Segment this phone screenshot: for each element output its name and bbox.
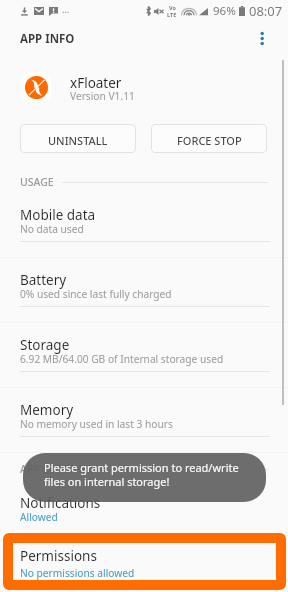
staticText: LTE (167, 11, 177, 18)
staticText: Mobile data (20, 206, 96, 224)
staticText: Permissions (20, 547, 97, 565)
staticText: Please grant permission to read/write fi… (44, 460, 239, 489)
staticText: Vo (169, 4, 176, 11)
staticText: Version V1.11 (70, 89, 135, 103)
staticText: UNINSTALL (48, 133, 108, 148)
staticText: No data used (20, 222, 84, 236)
staticText: ... (62, 3, 70, 15)
staticText: FORCE STOP (177, 133, 242, 148)
button[interactable]: Notifications (0, 491, 288, 556)
staticText: Notifications (20, 494, 101, 512)
staticText: xFloater (70, 74, 122, 92)
button[interactable]: Permissions (3, 533, 286, 590)
button[interactable]: UNINSTALL (20, 124, 136, 153)
button[interactable]: Battery (0, 268, 288, 333)
staticText: APP SETTINGS (20, 462, 92, 476)
button[interactable]: More options (248, 22, 276, 50)
button[interactable]: Mobile data (0, 203, 288, 268)
staticText: 96% (213, 3, 236, 19)
button[interactable]: FORCE STOP (151, 124, 267, 153)
staticText: Storage (20, 336, 70, 354)
staticText: 6.92 MB/64.00 GB of Internal storage use… (20, 352, 224, 366)
staticText: No memory used in last 3 hours (20, 417, 173, 431)
staticText: APP INFO (20, 31, 75, 47)
staticText: Memory (20, 401, 74, 419)
staticText: Battery (20, 271, 67, 289)
button[interactable]: Memory (0, 398, 288, 463)
staticText: USAGE (20, 175, 54, 189)
staticText: Allowed (20, 510, 58, 524)
staticText: No permissions allowed (20, 566, 135, 580)
staticText: 0% used since last fully charged (20, 287, 172, 301)
button[interactable]: Storage (0, 333, 288, 398)
staticText: 08:07 (249, 2, 283, 20)
